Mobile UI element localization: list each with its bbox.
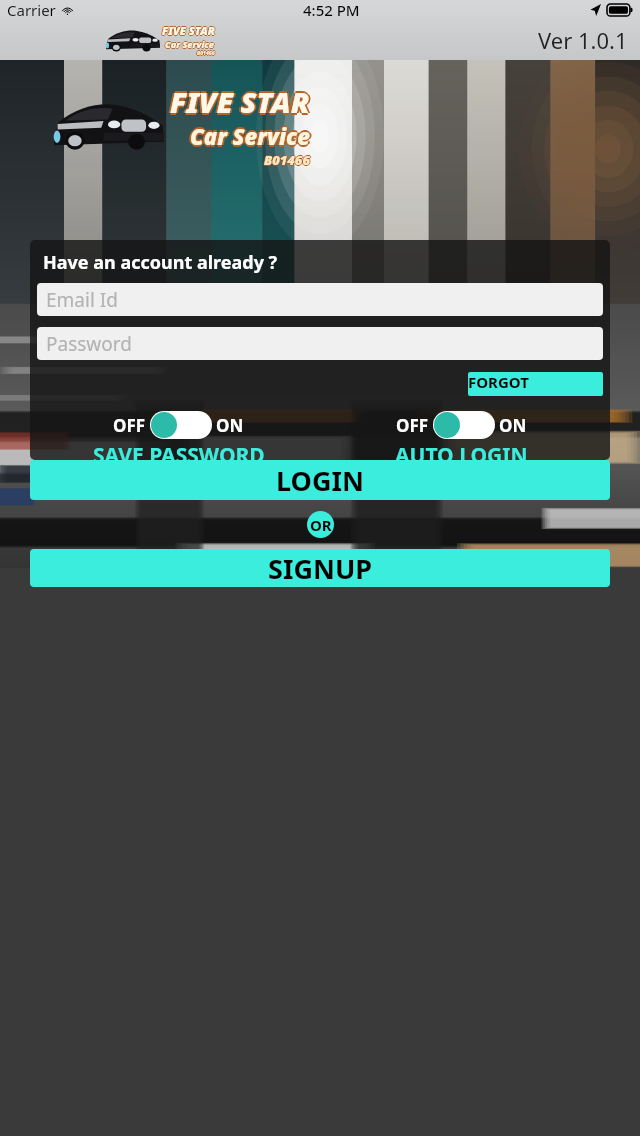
staticText: Car Service — [190, 119, 310, 149]
staticText: B01466 — [264, 151, 310, 169]
staticText: B01466 — [197, 50, 215, 57]
staticText: FIVE STAR — [168, 82, 308, 121]
staticText: 4:52 PM — [303, 0, 360, 20]
staticText: OFF — [396, 414, 429, 437]
staticText: B01466 — [197, 51, 215, 58]
button[interactable]: SIGNUP — [30, 549, 610, 587]
button[interactable]: SAVE PASSWORD — [113, 411, 244, 439]
staticText: B01466 — [196, 50, 214, 57]
staticText: FIVE STAR — [170, 84, 310, 123]
staticText: FIVE STAR — [170, 80, 310, 119]
button[interactable]: Password — [37, 327, 603, 360]
staticText: B01466 — [265, 151, 311, 169]
staticText: FIVE STAR — [172, 82, 312, 121]
staticText: B01466 — [197, 49, 215, 56]
staticText: Car Service — [166, 38, 216, 50]
staticText: FIVE STAR — [162, 22, 215, 37]
staticText: Car Service — [164, 38, 214, 50]
staticText: FIVE STAR — [161, 23, 214, 38]
button[interactable]: Email Id — [37, 283, 603, 316]
staticText: Carrier — [7, 0, 56, 20]
staticText: Email Id — [46, 287, 118, 313]
staticText: Ver 1.0.1 — [538, 25, 628, 55]
staticText: Car Service — [188, 121, 308, 151]
staticText: FIVE STAR — [162, 23, 215, 38]
staticText: Car Service — [192, 121, 312, 151]
staticText: ON — [499, 414, 527, 437]
staticText: Car Service — [190, 121, 310, 151]
staticText: Password — [46, 331, 132, 357]
button[interactable]: LOGIN — [30, 460, 610, 500]
staticText: B01466 — [264, 152, 310, 170]
staticText: B01466 — [264, 150, 310, 168]
staticText: Car Service — [165, 39, 215, 51]
staticText: SAVE PASSWORD — [93, 441, 265, 460]
button[interactable]: OR — [307, 511, 334, 538]
staticText: FIVE STAR — [162, 24, 215, 39]
staticText: OFF — [113, 414, 146, 437]
staticText: Have an account already ? — [43, 250, 278, 275]
staticText: SIGNUP — [268, 550, 373, 587]
staticText: AUTO LOGIN — [395, 441, 528, 460]
staticText: LOGIN — [276, 462, 364, 499]
staticText: FORGOT PASSWORD ? — [468, 372, 603, 396]
staticText: Car Service — [165, 37, 215, 49]
staticText: Car Service — [190, 123, 310, 153]
staticText: OR — [310, 515, 332, 535]
button[interactable]: FORGOT PASSWORD ? — [468, 372, 603, 396]
staticText: ON — [216, 414, 244, 437]
staticText: B01466 — [263, 151, 309, 169]
staticText: B01466 — [198, 50, 216, 57]
button[interactable]: AUTO LOGIN — [396, 411, 527, 439]
staticText: Car Service — [165, 38, 215, 50]
staticText: FIVE STAR — [170, 82, 310, 121]
staticText: FIVE STAR — [163, 23, 216, 38]
